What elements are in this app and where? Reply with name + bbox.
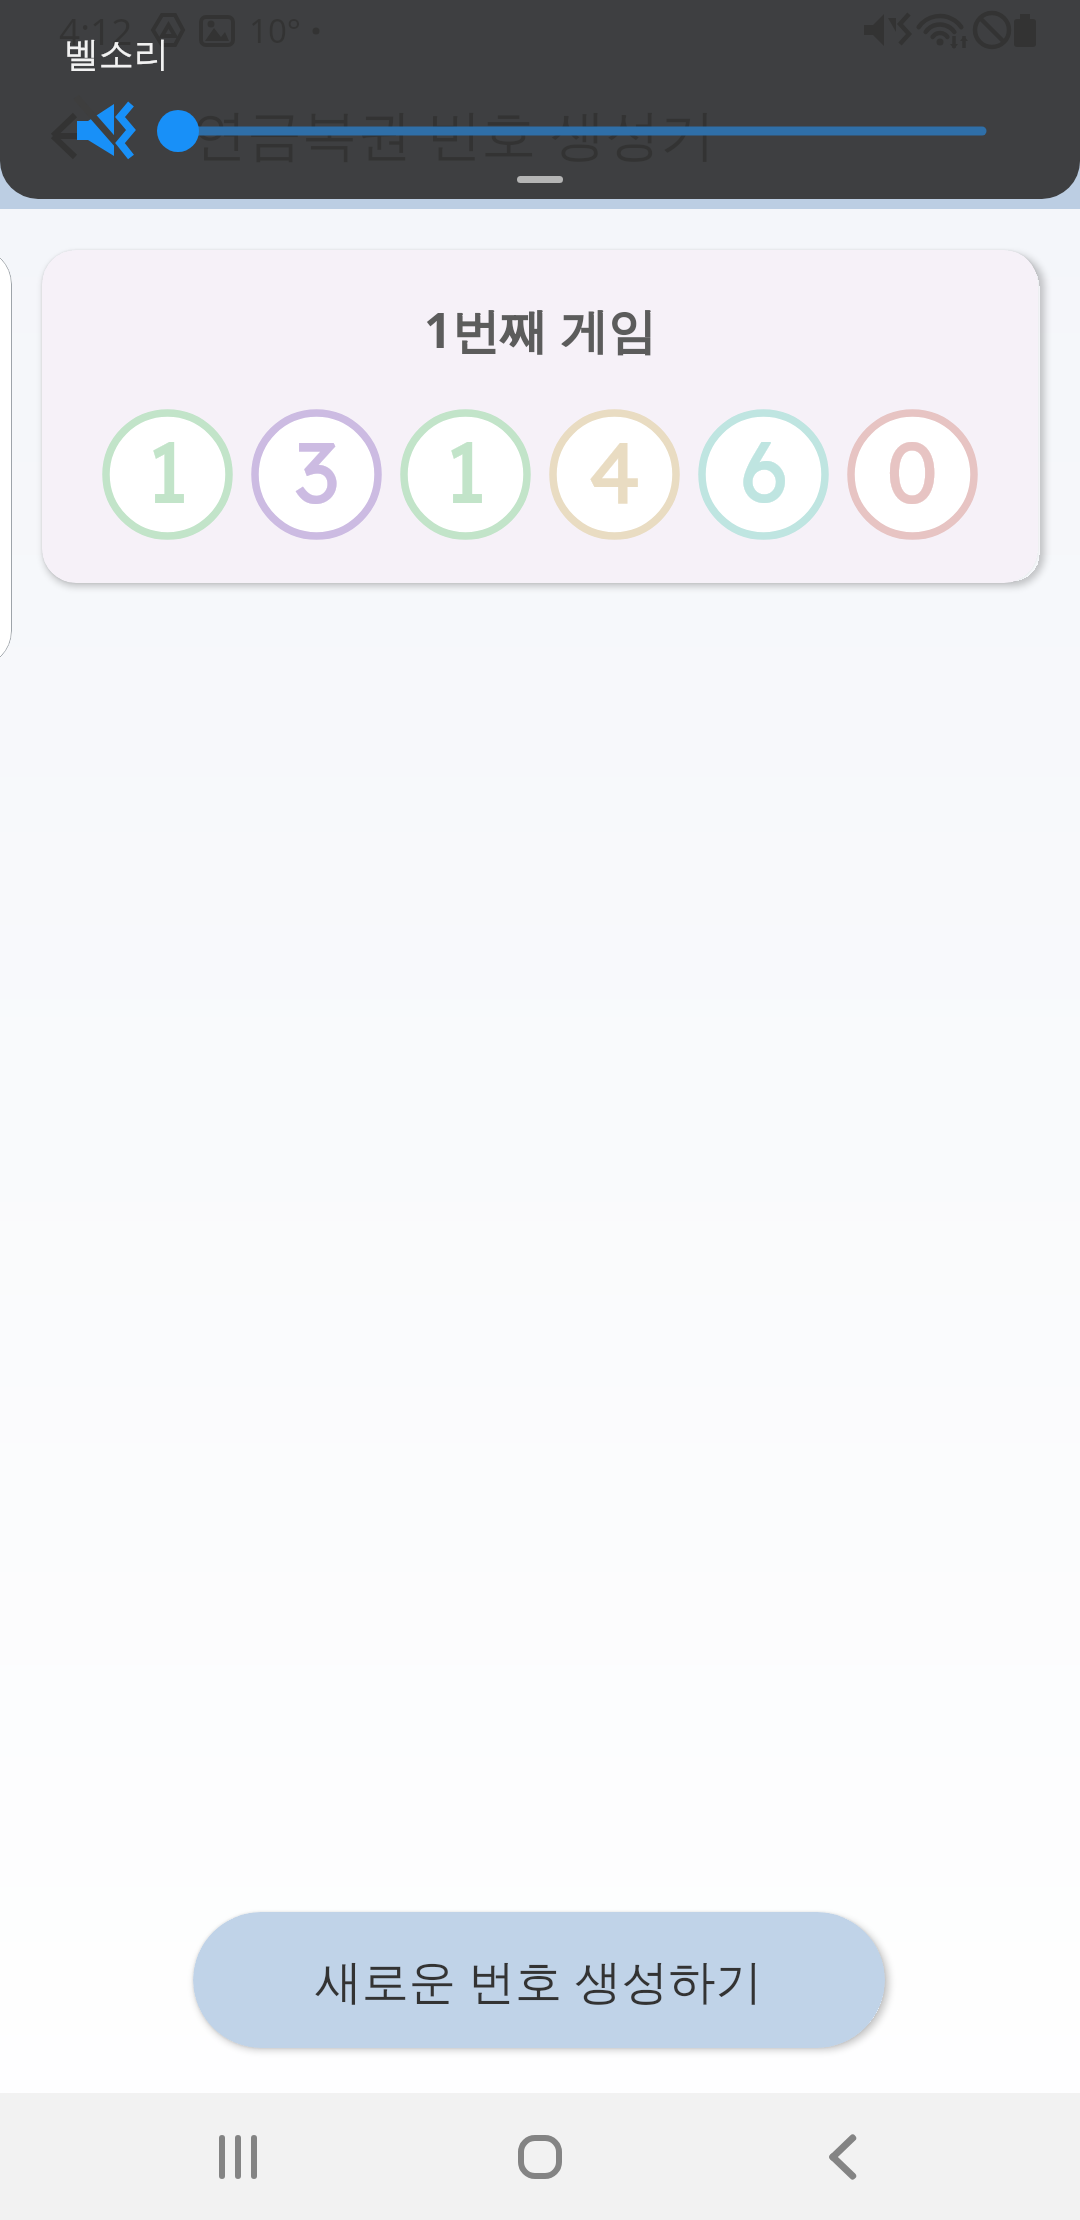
staticText: 연금복권 번호 생성기: [192, 95, 716, 170]
button[interactable]: 새로운 번호 생성하기: [193, 1912, 885, 2048]
staticText: 10°: [249, 8, 301, 53]
staticText: 벨소리: [64, 32, 169, 76]
staticText: 1번째 게임: [424, 297, 656, 363]
staticText: 3: [294, 417, 340, 525]
staticText: 4:12: [59, 5, 133, 55]
button[interactable]: Ringer mode: [75, 101, 135, 161]
button[interactable]: Back: [753, 2093, 933, 2220]
button[interactable]: 1번째 게임: [42, 250, 1038, 583]
staticText: 1: [146, 417, 189, 525]
button[interactable]: Home: [450, 2093, 630, 2220]
staticText: 6: [740, 417, 788, 525]
staticText: 0: [886, 417, 939, 525]
button[interactable]: Volume slider: [157, 110, 199, 152]
staticText: 1: [444, 417, 487, 525]
button[interactable]: Back: [30, 93, 116, 179]
staticText: 4: [588, 417, 642, 525]
staticText: 새로운 번호 생성하기: [315, 1948, 763, 2012]
button[interactable]: Recent apps: [148, 2093, 328, 2220]
